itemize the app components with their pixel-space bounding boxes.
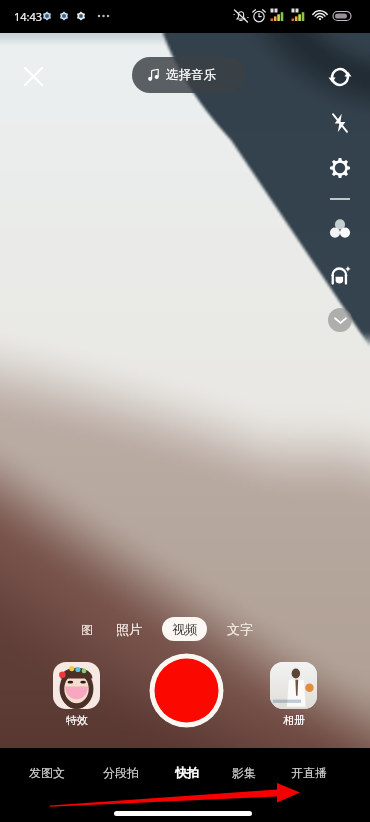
staticText: 选择音乐 xyxy=(166,67,217,83)
button[interactable]: 选择音乐 xyxy=(132,57,245,93)
button[interactable]: Settings xyxy=(324,152,356,184)
button[interactable]: 文字 xyxy=(219,617,261,641)
button[interactable]: 开直播 xyxy=(286,758,332,786)
button[interactable]: Record xyxy=(149,653,224,728)
button[interactable]: Close xyxy=(17,60,49,92)
staticText: 图 xyxy=(81,622,93,637)
button[interactable]: Beauty xyxy=(324,260,356,292)
staticText: 相册 xyxy=(283,713,305,727)
staticText: 特效 xyxy=(66,713,88,727)
button[interactable]: 影集 xyxy=(228,758,260,786)
button[interactable]: Filters xyxy=(324,213,356,245)
button[interactable]: 照片 xyxy=(108,617,150,641)
staticText: 分段拍 xyxy=(103,765,139,780)
button[interactable]: Gallery picker xyxy=(74,617,100,641)
button[interactable]: 视频 xyxy=(162,617,207,641)
staticText: 照片 xyxy=(116,621,142,637)
staticText: 快拍 xyxy=(175,765,199,780)
staticText: 14:43 xyxy=(14,9,43,24)
button[interactable]: 快拍 xyxy=(171,758,203,786)
button[interactable]: 相册 xyxy=(265,662,322,736)
button[interactable]: 分段拍 xyxy=(98,758,144,786)
staticText: 文字 xyxy=(227,621,253,637)
button[interactable]: Switch camera xyxy=(324,61,356,93)
staticText: 开直播 xyxy=(291,765,327,780)
button[interactable]: Collapse xyxy=(328,308,352,332)
button[interactable]: 特效 xyxy=(48,662,105,736)
staticText: 影集 xyxy=(232,765,256,780)
staticText: 视频 xyxy=(172,621,198,637)
staticText: 发图文 xyxy=(29,765,65,780)
button[interactable]: Flash off xyxy=(324,107,356,139)
button[interactable]: 发图文 xyxy=(24,758,70,786)
